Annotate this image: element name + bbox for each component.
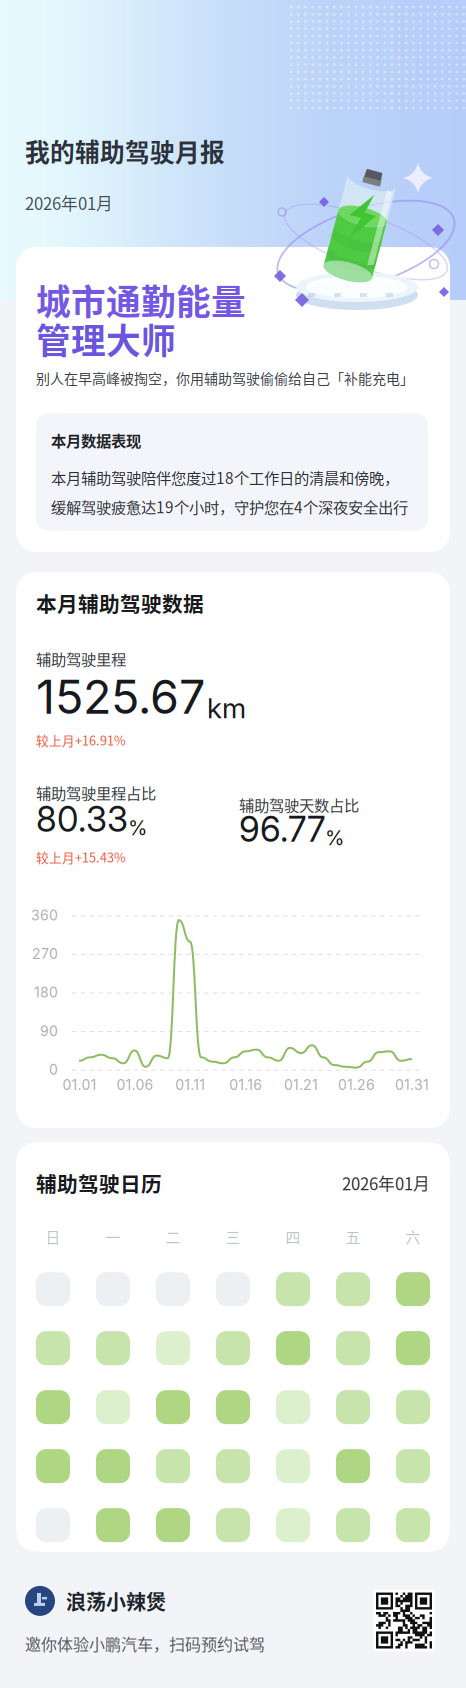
staticText: 辅助驾驶里程 — [36, 647, 126, 670]
staticText: 360 — [31, 907, 58, 924]
staticText: km — [207, 691, 246, 725]
staticText: 辅助驾驶天数占比 — [239, 793, 359, 816]
staticText: 96.77 — [239, 808, 325, 850]
staticText: 较上月+16.91% — [36, 731, 126, 749]
staticText: 日 — [45, 1226, 60, 1247]
staticText: 180 — [34, 984, 58, 1001]
staticText: 0 — [49, 1061, 58, 1078]
staticText: 五 — [345, 1226, 360, 1247]
staticText: 别人在早高峰被掏空，你用辅助驾驶偷偷给自己「补能充电」 — [36, 368, 414, 388]
staticText: 本月数据表现 — [51, 429, 141, 451]
staticText: 01.01 — [62, 1076, 96, 1093]
staticText: 90 — [40, 1023, 58, 1039]
staticText: 管理大师 — [36, 314, 176, 364]
staticText: 辅助驾驶日历 — [36, 1168, 162, 1198]
staticText: 六 — [405, 1226, 420, 1247]
staticText: 较上月+15.43% — [36, 848, 126, 866]
staticText: 三 — [225, 1226, 240, 1247]
staticText: 邀你体验小鹏汽车，扫码预约试驾 — [25, 1632, 265, 1655]
staticText: 01.11 — [175, 1076, 205, 1093]
staticText: 浪荡小辣煲 — [66, 1586, 166, 1615]
staticText: 01.06 — [116, 1076, 153, 1093]
staticText: 01.21 — [284, 1076, 318, 1093]
staticText: 本月辅助驾驶数据 — [36, 588, 204, 618]
staticText: 2026年01月 — [25, 191, 113, 215]
staticText: 二 — [165, 1226, 180, 1247]
staticText: 01.31 — [395, 1076, 429, 1093]
staticText: 01.26 — [338, 1076, 375, 1093]
staticText: 270 — [32, 945, 58, 962]
staticText: 01.16 — [229, 1076, 262, 1093]
staticText: 一 — [105, 1226, 120, 1247]
staticText: 我的辅助驾驶月报 — [25, 133, 225, 169]
staticText: 缓解驾驶疲惫达19个小时，守护您在4个深夜安全出行 — [51, 495, 408, 518]
staticText: 2026年01月 — [342, 1171, 430, 1195]
staticText: 城市通勤能量 — [36, 275, 246, 325]
staticText: 辅助驾驶里程占比 — [36, 781, 156, 804]
staticText: 1525.67 — [36, 668, 205, 725]
staticText: 本月辅助驾驶陪伴您度过18个工作日的清晨和傍晚， — [51, 466, 399, 488]
staticText: % — [325, 826, 344, 850]
staticText: % — [128, 816, 147, 840]
staticText: 四 — [285, 1226, 300, 1247]
staticText: 80.33 — [36, 798, 128, 840]
